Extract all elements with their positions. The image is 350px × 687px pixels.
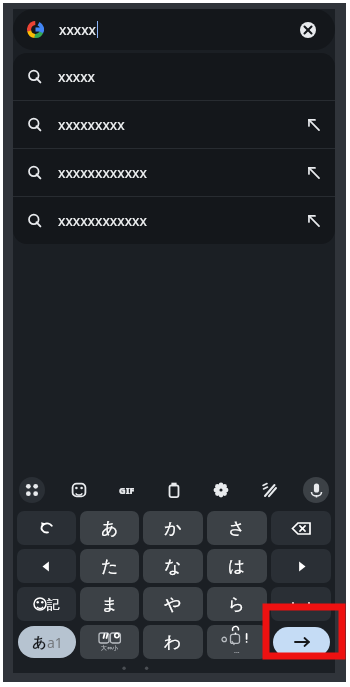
button[interactable]: Delete <box>271 511 331 545</box>
button[interactable]: Clipboard <box>161 477 187 503</box>
staticText: さ <box>228 518 246 539</box>
button[interactable]: ま <box>80 587 139 621</box>
button[interactable]: や <box>143 587 203 621</box>
button[interactable]: ら <box>207 587 267 621</box>
button[interactable]: Move right <box>271 549 331 583</box>
staticText: GIF <box>119 484 135 496</box>
button[interactable]: GIF <box>114 477 140 503</box>
staticText: ら <box>228 594 246 615</box>
button[interactable]: あ <box>80 511 139 545</box>
button[interactable]: xxxxx <box>13 9 335 50</box>
button[interactable]: xxxxxxxxxxxx <box>13 197 335 244</box>
staticText: わ <box>164 632 182 653</box>
staticText: あ <box>32 634 47 652</box>
button[interactable]: Switch input mode <box>17 625 76 659</box>
staticText: ... <box>234 646 240 656</box>
button[interactable]: Clear search <box>295 17 321 43</box>
button[interactable]: Enter <box>271 625 331 659</box>
button[interactable]: Emoji and symbols <box>17 587 76 621</box>
button[interactable]: Voice input <box>303 477 329 503</box>
staticText: は <box>228 556 246 577</box>
staticText: xxxxxxxxxxxx <box>58 211 147 230</box>
staticText: xxxxxxxxxxxx <box>58 163 147 182</box>
staticText: か <box>164 518 182 539</box>
button[interactable]: xxxxxxxxxxxx <box>13 149 335 196</box>
staticText: xxxxxxxxx <box>58 115 125 134</box>
staticText: 記 <box>47 596 60 612</box>
button[interactable]: xxxxxxxxx <box>13 101 335 148</box>
button[interactable]: Undo <box>17 511 76 545</box>
button[interactable]: Stickers <box>66 477 92 503</box>
button[interactable]: Dakuten and small <box>80 625 139 659</box>
button[interactable]: Handwriting <box>256 477 282 503</box>
button[interactable]: Apps <box>19 477 45 503</box>
button[interactable]: Space <box>271 587 331 621</box>
staticText: xxxxx <box>58 67 96 86</box>
button[interactable]: xxxxx <box>13 53 335 100</box>
button[interactable]: は <box>207 549 267 583</box>
staticText: xxxxx <box>59 20 97 39</box>
staticText: あ <box>101 518 119 539</box>
button[interactable]: た <box>80 549 139 583</box>
staticText: た <box>101 556 119 577</box>
staticText: ま <box>101 594 119 615</box>
button[interactable]: さ <box>207 511 267 545</box>
staticText: a1 <box>47 633 63 652</box>
staticText: 大⇔小 <box>101 644 119 652</box>
button[interactable]: わ <box>143 625 203 659</box>
button[interactable]: な <box>143 549 203 583</box>
staticText: な <box>164 556 182 577</box>
staticText: や <box>164 594 182 615</box>
button[interactable]: か <box>143 511 203 545</box>
button[interactable]: Settings <box>208 477 234 503</box>
button[interactable]: Move left <box>17 549 76 583</box>
button[interactable]: Punctuation <box>207 625 267 659</box>
